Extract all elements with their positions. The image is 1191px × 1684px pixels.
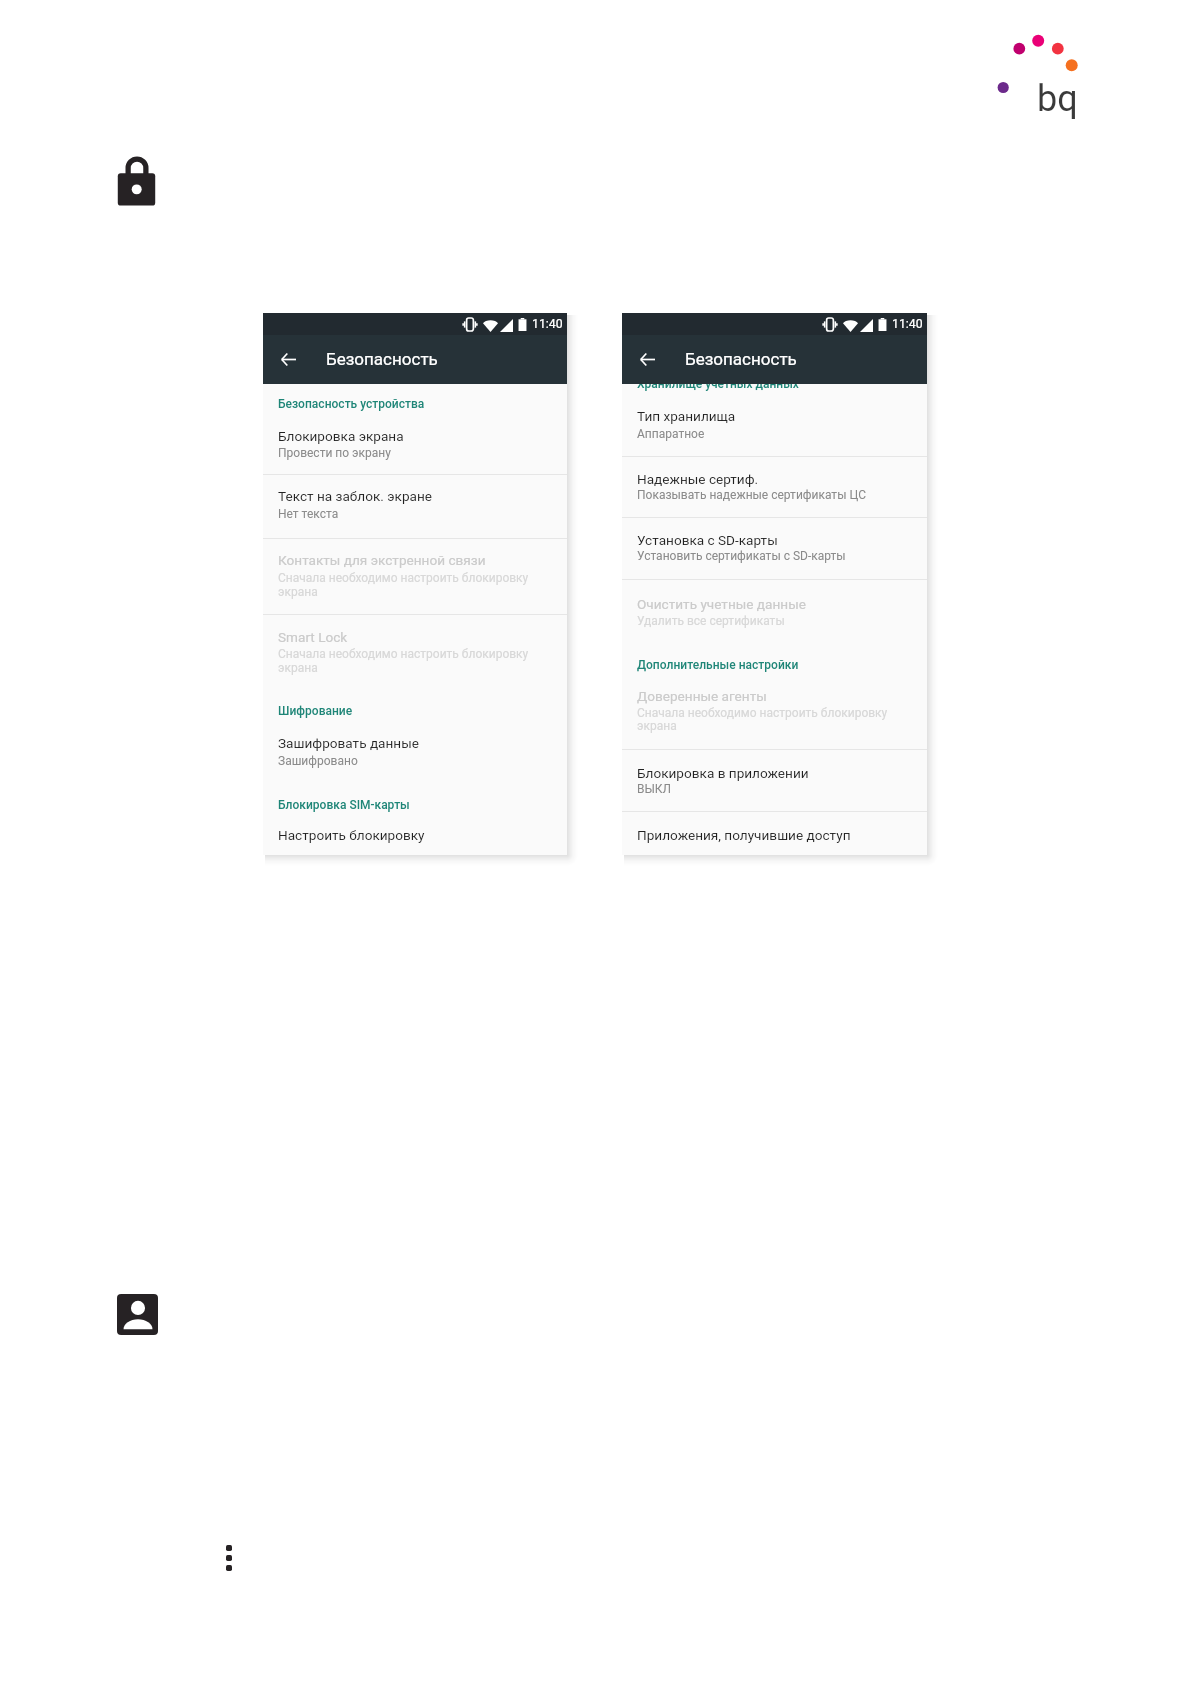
button[interactable]	[622, 812, 927, 855]
staticText: bq	[1037, 78, 1078, 120]
staticText: Текст на заблок. экране	[278, 488, 433, 504]
staticText: Установить сертификаты с SD-карты	[637, 549, 846, 563]
staticText: Показывать надежные сертификаты ЦС	[637, 488, 867, 502]
staticText: Нет текста	[278, 507, 339, 521]
button[interactable]	[263, 614, 567, 690]
staticText: Хранилище учетных данных	[637, 377, 799, 391]
button[interactable]	[622, 383, 927, 454]
staticText: 11:40	[892, 317, 923, 331]
staticText: Надежные сертиф.	[637, 471, 759, 487]
staticText: Безопасность	[326, 349, 438, 369]
button[interactable]	[263, 725, 567, 775]
staticText: Сначала необходимо настроить блокировку	[278, 647, 529, 661]
button[interactable]	[622, 455, 927, 516]
button[interactable]	[622, 580, 927, 645]
staticText: Установка с SD-карты	[637, 532, 778, 548]
staticText: Сначала необходимо настроить блокировку	[278, 571, 529, 585]
staticText: Доверенные агенты	[637, 688, 767, 704]
button[interactable]	[622, 680, 927, 749]
button[interactable]: Screen lock	[117, 155, 156, 206]
staticText: Зашифровано	[278, 754, 358, 768]
staticText: Очистить учетные данные	[637, 596, 806, 612]
button[interactable]: Contacts	[117, 1294, 158, 1335]
staticText: Зашифровать данные	[278, 735, 419, 751]
button[interactable]: bq logo	[995, 28, 1087, 123]
staticText: Блокировка в приложении	[637, 765, 809, 781]
button[interactable]	[263, 383, 567, 472]
button[interactable]	[263, 818, 567, 855]
staticText: Сначала необходимо настроить блокировку	[637, 706, 888, 720]
button[interactable]: Back	[632, 344, 662, 374]
button[interactable]	[622, 517, 927, 579]
staticText: 11:40	[532, 317, 563, 331]
staticText: Блокировка экрана	[278, 428, 404, 444]
staticText: экрана	[278, 585, 318, 599]
staticText: Smart Lock	[278, 629, 348, 645]
staticText: Безопасность	[685, 349, 797, 369]
staticText: Приложения, получившие доступ	[637, 827, 851, 843]
staticText: экрана	[637, 719, 677, 733]
staticText: экрана	[278, 661, 318, 675]
staticText: Контакты для экстренной связи	[278, 552, 486, 568]
button[interactable]	[263, 473, 567, 537]
staticText: Дополнительные настройки	[637, 658, 799, 672]
staticText: Блокировка SIM-карты	[278, 798, 410, 812]
button[interactable]: Back	[273, 344, 303, 374]
staticText: Аппаратное	[637, 427, 705, 441]
staticText: Безопасность устройства	[278, 397, 425, 411]
staticText: Удалить все сертификаты	[637, 614, 785, 628]
button[interactable]: More options	[226, 1545, 232, 1571]
staticText: Тип хранилища	[637, 408, 736, 424]
staticText: ВЫКЛ	[637, 782, 672, 796]
staticText: Шифрование	[278, 704, 353, 718]
staticText: Настроить блокировку	[278, 827, 425, 843]
button[interactable]	[622, 750, 927, 811]
staticText: Провести по экрану	[278, 446, 391, 460]
button[interactable]	[263, 538, 567, 613]
